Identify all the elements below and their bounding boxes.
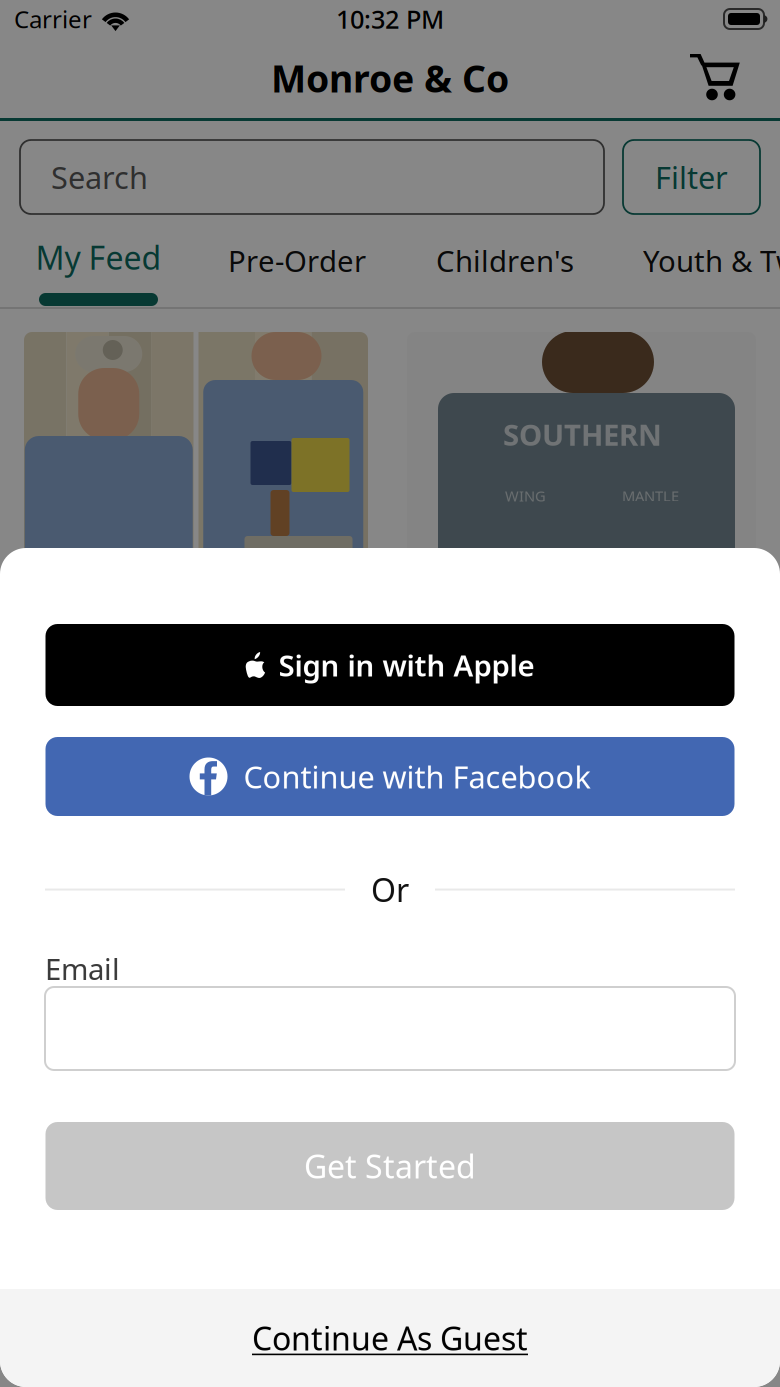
- button[interactable]: Sign in with Apple: [45, 624, 734, 706]
- button[interactable]: Cart: [690, 54, 741, 102]
- staticText: Pre-Order: [228, 241, 366, 280]
- button[interactable]: Product: Southern Strut tee: [407, 332, 756, 662]
- staticText: Monroe & Co: [271, 53, 509, 103]
- staticText: Continue As Guest: [252, 1317, 528, 1359]
- button[interactable]: Get Started: [45, 1122, 734, 1210]
- staticText: Search: [51, 157, 148, 197]
- button[interactable]: My Feed: [0, 229, 197, 307]
- staticText: Filter: [655, 157, 728, 197]
- button[interactable]: Product: blue tee, front and back: [24, 332, 368, 662]
- button[interactable]: Children's: [405, 229, 605, 292]
- staticText: My Feed: [35, 236, 161, 278]
- staticText: Continue with Facebook: [243, 756, 590, 797]
- button[interactable]: Continue with Facebook: [45, 737, 734, 816]
- staticText: 10:32 PM: [336, 2, 444, 36]
- staticText: WING: [505, 486, 546, 505]
- staticText: Get Started: [304, 1145, 476, 1187]
- staticText: SOUTHERN: [503, 415, 662, 454]
- button[interactable]: Continue As Guest: [0, 1289, 780, 1387]
- staticText: Youth & Tw: [643, 241, 780, 280]
- button[interactable]: Pre-Order: [197, 229, 397, 292]
- staticText: Carrier: [14, 3, 92, 35]
- button[interactable]: Search: [20, 140, 604, 214]
- staticText: Sign in with Apple: [278, 645, 534, 684]
- button[interactable]: Filter: [623, 140, 760, 214]
- staticText: Email: [45, 949, 120, 988]
- staticText: Children's: [436, 241, 574, 280]
- staticText: Or: [371, 868, 409, 911]
- staticText: MANTLE: [622, 486, 679, 505]
- button[interactable]: Youth & Tw: [643, 229, 780, 292]
